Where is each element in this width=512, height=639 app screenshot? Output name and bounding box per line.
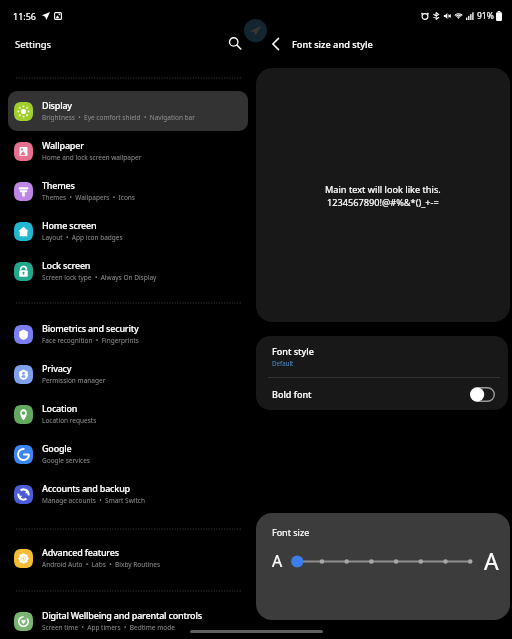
staticText: Google services <box>42 456 90 465</box>
staticText: Wallpaper <box>42 139 84 151</box>
staticText: A <box>272 550 283 572</box>
staticText: Privacy <box>42 362 72 374</box>
staticText: 91% <box>477 10 494 22</box>
button[interactable]: Floating bubble <box>244 19 267 42</box>
staticText: 1234567890!@#%&*()_+-= <box>327 196 439 209</box>
staticText: Digital Wellbeing and parental controls <box>42 609 202 621</box>
staticText: Home and lock screen wallpaper <box>42 153 142 162</box>
button[interactable]: Lock screen <box>8 251 248 291</box>
staticText: A <box>484 545 499 576</box>
button[interactable]: Privacy <box>8 354 248 394</box>
staticText: Main text will look like this. <box>325 183 441 196</box>
staticText: Themes <box>42 179 75 191</box>
button[interactable]: Bold font <box>470 387 495 402</box>
staticText: Font size and style <box>292 38 373 51</box>
staticText: Settings <box>15 38 52 51</box>
staticText: Biometrics and security <box>42 322 139 334</box>
button[interactable]: Search <box>224 32 246 54</box>
staticText: Display <box>42 99 72 111</box>
staticText: Screen time • App timers • Bedtime mode <box>42 623 175 632</box>
staticText: Permission manager <box>42 376 106 385</box>
staticText: Default <box>272 359 294 367</box>
button[interactable]: Google <box>8 434 248 474</box>
button[interactable]: Font style <box>256 336 508 377</box>
staticText: Location requests <box>42 416 97 425</box>
button[interactable]: Wallpaper <box>8 131 248 171</box>
staticText: Font size <box>272 526 310 538</box>
button[interactable]: Advanced features <box>8 538 248 578</box>
staticText: Lock screen <box>42 259 91 271</box>
staticText: Manage accounts • Smart Switch <box>42 496 145 505</box>
staticText: 11:56 <box>13 10 37 22</box>
button[interactable]: Themes <box>8 171 248 211</box>
button[interactable]: Display <box>8 91 248 131</box>
button[interactable]: Back <box>264 32 288 56</box>
button[interactable]: Biometrics and security <box>8 314 248 354</box>
staticText: Bold font <box>272 388 312 400</box>
staticText: Screen lock type • Always On Display <box>42 273 157 282</box>
staticText: Advanced features <box>42 546 119 558</box>
button[interactable]: Bold font <box>256 378 508 410</box>
staticText: Brightness • Eye comfort shield • Naviga… <box>42 113 195 122</box>
button[interactable]: Font size slider <box>286 552 486 571</box>
staticText: Home screen <box>42 219 97 231</box>
staticText: Android Auto • Labs • Bixby Routines <box>42 560 161 569</box>
staticText: Layout • App icon badges <box>42 233 123 242</box>
staticText: Face recognition • Fingerprints <box>42 336 139 345</box>
staticText: Accounts and backup <box>42 482 130 494</box>
staticText: Location <box>42 402 78 414</box>
button[interactable]: Home screen <box>8 211 248 251</box>
button[interactable]: Accounts and backup <box>8 474 248 514</box>
staticText: Themes • Wallpapers • Icons <box>42 193 135 202</box>
button[interactable]: Location <box>8 394 248 434</box>
staticText: Google <box>42 442 72 454</box>
staticText: Font style <box>272 345 314 357</box>
button[interactable]: Digital Wellbeing and parental controls <box>8 601 248 639</box>
